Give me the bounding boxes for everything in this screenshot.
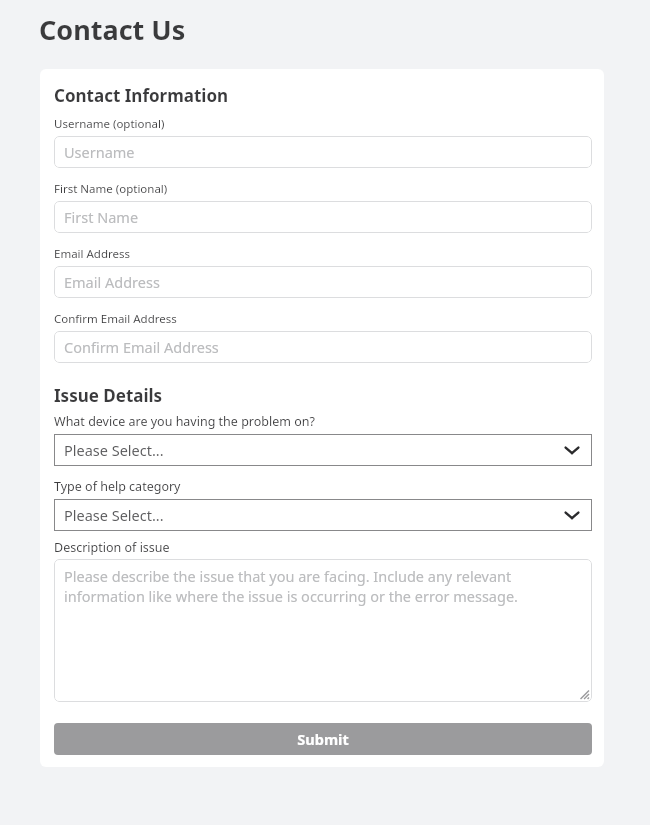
staticText: Please describe the issue that you are f… xyxy=(64,566,584,607)
staticText: Submit xyxy=(297,729,349,749)
staticText: Confirm Email Address xyxy=(54,311,177,327)
staticText: First Name xyxy=(64,207,139,227)
staticText: Contact Us xyxy=(39,11,186,48)
staticText: Description of issue xyxy=(54,539,170,556)
staticText: Type of help category xyxy=(54,478,181,495)
staticText: Email Address xyxy=(54,246,131,262)
staticText: Contact Information xyxy=(54,84,229,107)
button[interactable]: Please Select dropdown xyxy=(54,499,592,531)
button[interactable]: Email Address xyxy=(54,266,592,298)
button[interactable]: First Name xyxy=(54,201,592,233)
button[interactable]: Confirm Email Address xyxy=(54,331,592,363)
staticText: Please Select... xyxy=(64,440,164,460)
staticText: Username (optional) xyxy=(54,116,165,132)
button[interactable]: Username xyxy=(54,136,592,168)
staticText: Please Select... xyxy=(64,505,164,525)
staticText: First Name (optional) xyxy=(54,181,168,197)
staticText: Username xyxy=(64,142,135,162)
button[interactable]: Please Select dropdown xyxy=(54,434,592,466)
staticText: Email Address xyxy=(64,272,160,292)
staticText: What device are you having the problem o… xyxy=(54,413,315,430)
button[interactable]: Please describe the issue that you are f… xyxy=(54,559,592,702)
button[interactable]: Submit xyxy=(54,723,592,755)
staticText: Confirm Email Address xyxy=(64,337,219,357)
staticText: Issue Details xyxy=(54,384,163,407)
